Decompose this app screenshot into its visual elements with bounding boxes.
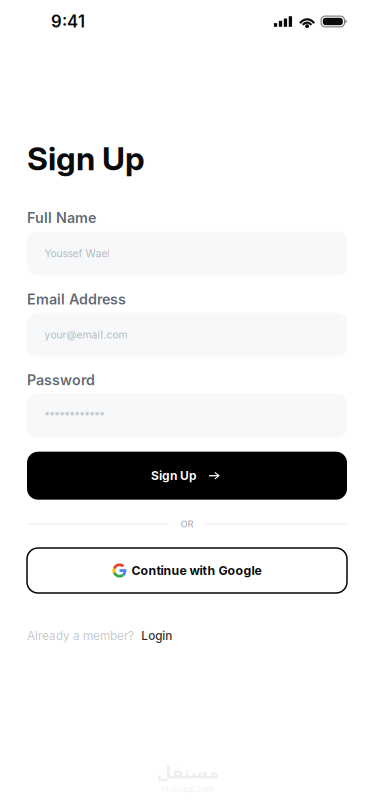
button[interactable]: ************ (27, 394, 347, 438)
button[interactable]: Sign Up (27, 452, 347, 500)
staticText: your@email.com (44, 328, 127, 341)
staticText: Full Name (27, 209, 96, 227)
staticText: 9:41 (51, 11, 85, 32)
staticText: mostaql.com (161, 783, 214, 794)
staticText: Password (27, 371, 95, 389)
staticText: Continue with Google (132, 563, 262, 578)
staticText: مستقل (156, 762, 219, 782)
staticText: Sign Up (151, 468, 197, 483)
button[interactable]: Youssef Wael (27, 231, 347, 275)
button[interactable]: your@email.com (27, 313, 347, 357)
staticText: Email Address (27, 291, 126, 308)
staticText: Sign Up (27, 139, 145, 178)
staticText: Youssef Wael (44, 247, 110, 260)
staticText: ************ (44, 409, 104, 422)
button[interactable]: Already a member? (27, 630, 172, 642)
staticText: Already a member? (27, 629, 134, 643)
staticText: OR (180, 518, 193, 530)
button[interactable]: Continue with Google (27, 548, 347, 593)
staticText: Login (141, 629, 172, 643)
